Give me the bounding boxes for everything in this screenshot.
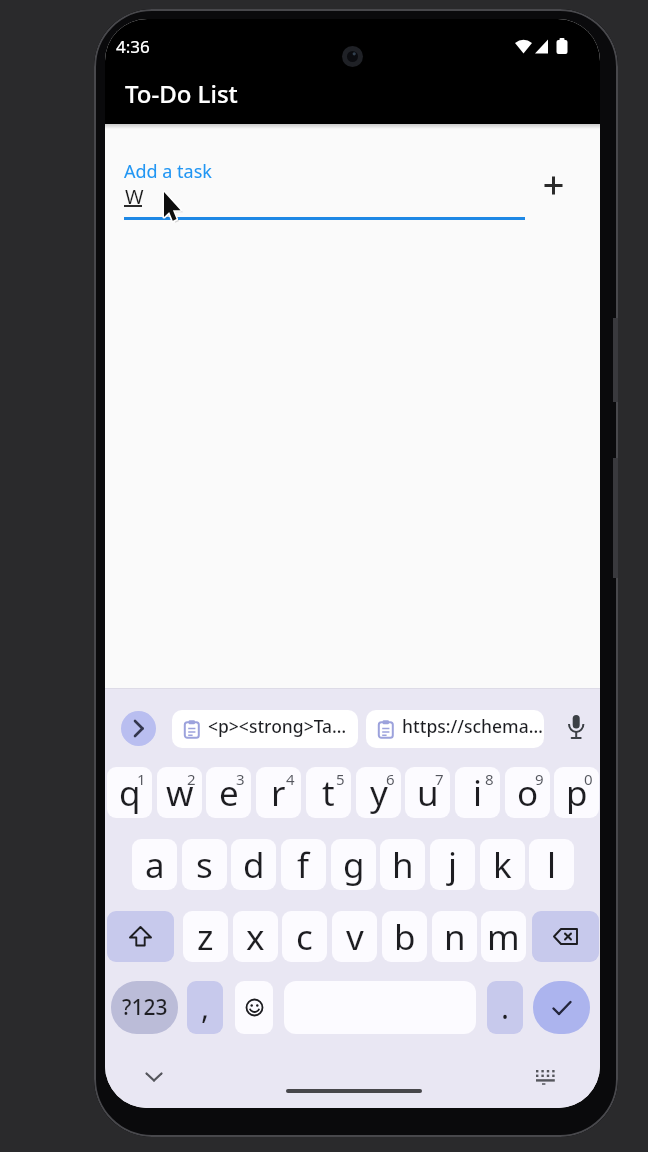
staticText: t [322, 769, 335, 817]
button[interactable]: c [282, 911, 327, 962]
button[interactable]: k [480, 839, 525, 890]
staticText: p [566, 769, 588, 817]
staticText: 8 [485, 769, 494, 789]
button[interactable]: o [505, 767, 550, 818]
staticText: Add a task [124, 159, 212, 184]
button[interactable]: z [183, 911, 228, 962]
staticText: 6 [386, 769, 395, 789]
button[interactable]: a [132, 839, 177, 890]
button[interactable]: l [529, 839, 574, 890]
button[interactable]: t [306, 767, 351, 818]
staticText: k [493, 841, 512, 889]
button[interactable] [532, 911, 599, 962]
button[interactable]: g [331, 839, 376, 890]
staticText: 9 [535, 769, 544, 789]
staticText: n [444, 913, 466, 961]
staticText: 4 [286, 769, 295, 789]
staticText: a [145, 841, 165, 889]
button[interactable]: j [430, 839, 475, 890]
button[interactable]: b [382, 911, 427, 962]
button[interactable] [561, 710, 591, 748]
staticText: w [166, 769, 194, 817]
staticText: g [343, 841, 365, 889]
button[interactable]: n [432, 911, 477, 962]
staticText: 0 [584, 769, 593, 789]
button[interactable]: f [281, 839, 326, 890]
staticText: c [296, 913, 313, 961]
staticText: , [201, 987, 210, 1028]
staticText: q [119, 769, 141, 817]
button[interactable]: w [157, 767, 202, 818]
staticText: 4:36 [116, 35, 150, 58]
staticText: W [125, 183, 144, 210]
staticText: y [370, 769, 388, 817]
button[interactable]: , [187, 981, 223, 1034]
staticText: To-Do List [125, 77, 238, 110]
button[interactable]: h [380, 839, 425, 890]
button[interactable]: s [182, 839, 227, 890]
staticText: ?123 [122, 993, 168, 1022]
button[interactable]: u [405, 767, 450, 818]
staticText: j [448, 841, 458, 889]
button[interactable] [235, 981, 273, 1034]
button[interactable]: x [233, 911, 278, 962]
staticText: r [271, 769, 286, 817]
button[interactable] [533, 981, 590, 1034]
button[interactable] [532, 164, 574, 206]
button[interactable]: <p><strong>Ta… [172, 710, 358, 748]
staticText: 3 [236, 769, 245, 789]
button[interactable]: q [107, 767, 152, 818]
staticText: 1 [137, 769, 146, 789]
button[interactable]: p [554, 767, 599, 818]
button[interactable]: r [256, 767, 301, 818]
button[interactable]: https://schema… [366, 710, 544, 748]
button[interactable]: . [487, 981, 523, 1034]
staticText: e [219, 769, 239, 817]
staticText: d [243, 841, 265, 889]
staticText: 2 [187, 769, 196, 789]
staticText: z [197, 913, 214, 961]
staticText: b [394, 913, 416, 961]
staticText: u [417, 769, 439, 817]
staticText: m [487, 913, 520, 961]
staticText: v [346, 913, 364, 961]
staticText: 5 [336, 769, 345, 789]
staticText: h [392, 841, 414, 889]
button[interactable]: m [481, 911, 526, 962]
staticText: <p><strong>Ta… [208, 714, 347, 738]
button[interactable]: Add a task [124, 159, 212, 184]
button[interactable]: y [356, 767, 401, 818]
staticText: . [501, 987, 510, 1028]
button[interactable]: v [332, 911, 377, 962]
staticText: 7 [435, 769, 444, 789]
staticText: https://schema… [402, 714, 543, 738]
button[interactable]: ?123 [111, 981, 178, 1034]
button[interactable]: d [231, 839, 276, 890]
button[interactable]: i [455, 767, 500, 818]
staticText: o [517, 769, 539, 817]
staticText: l [547, 841, 557, 889]
button[interactable] [107, 911, 174, 962]
staticText: s [196, 841, 213, 889]
staticText: x [246, 913, 265, 961]
staticText: i [473, 769, 483, 817]
button[interactable]: e [206, 767, 251, 818]
button[interactable] [121, 711, 156, 746]
staticText: f [297, 841, 310, 889]
